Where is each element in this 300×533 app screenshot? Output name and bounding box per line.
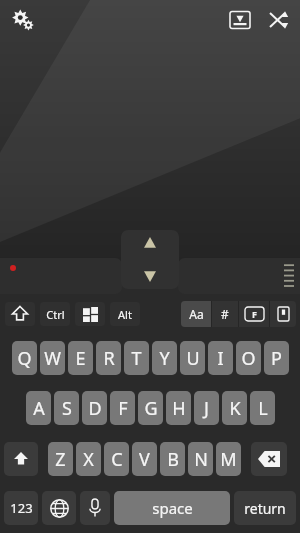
button[interactable]: Y — [152, 341, 177, 375]
staticText: F — [252, 308, 257, 320]
staticText: K — [229, 396, 241, 421]
staticText: F — [118, 396, 128, 421]
button[interactable]: 123 — [4, 491, 38, 525]
staticText: O — [241, 346, 256, 371]
button[interactable]: Backspace — [251, 442, 287, 476]
staticText: X — [83, 447, 94, 472]
button[interactable]: P — [264, 341, 289, 375]
button[interactable]: O — [236, 341, 261, 375]
staticText: N — [194, 447, 208, 472]
button[interactable]: E — [68, 341, 93, 375]
staticText: J — [204, 396, 209, 421]
button[interactable]: Shuffle — [262, 4, 294, 36]
button[interactable]: V — [132, 442, 157, 476]
button[interactable]: W — [40, 341, 65, 375]
staticText: G — [144, 396, 158, 421]
button[interactable] — [75, 302, 105, 326]
button[interactable]: G — [138, 391, 163, 425]
button[interactable]: Change language — [42, 491, 76, 525]
button[interactable]: Shift — [4, 442, 38, 476]
button[interactable]: Numpad — [270, 301, 296, 327]
button[interactable]: J — [194, 391, 219, 425]
button[interactable]: M — [216, 442, 241, 476]
button[interactable]: Q — [12, 341, 37, 375]
staticText: H — [172, 396, 186, 421]
staticText: C — [111, 447, 123, 472]
button[interactable]: Ctrl — [40, 302, 70, 326]
staticText: # — [221, 306, 229, 322]
staticText: 123 — [10, 499, 33, 517]
staticText: M — [220, 447, 237, 472]
staticText: B — [167, 447, 179, 472]
staticText: Alt — [118, 307, 132, 322]
button[interactable]: R — [96, 341, 121, 375]
staticText: D — [88, 396, 102, 421]
button[interactable]: S — [54, 391, 79, 425]
staticText: Z — [55, 447, 66, 472]
button[interactable]: H — [166, 391, 191, 425]
button[interactable]: D — [82, 391, 107, 425]
button[interactable]: L — [250, 391, 275, 425]
staticText: Ctrl — [46, 307, 65, 322]
staticText: W — [44, 346, 61, 371]
staticText: E — [75, 346, 86, 371]
button[interactable]: Keyboard — [224, 4, 256, 36]
button[interactable]: B — [160, 442, 185, 476]
staticText: S — [62, 396, 72, 421]
button[interactable]: N — [188, 442, 213, 476]
button[interactable]: F — [110, 391, 135, 425]
button[interactable]: U — [180, 341, 205, 375]
button[interactable]: Aa — [181, 301, 211, 327]
button[interactable]: return — [234, 491, 296, 525]
staticText: U — [186, 346, 200, 371]
button[interactable]: # — [212, 301, 238, 327]
staticText: P — [271, 346, 282, 371]
button[interactable]: T — [124, 341, 149, 375]
button[interactable]: K — [222, 391, 247, 425]
button[interactable]: I — [208, 341, 233, 375]
button[interactable]: Z — [48, 442, 73, 476]
button[interactable]: C — [104, 442, 129, 476]
button[interactable]: Voice input — [80, 491, 110, 525]
staticText: T — [131, 346, 142, 371]
staticText: space — [152, 498, 193, 518]
staticText: return — [244, 499, 286, 518]
button[interactable]: A — [26, 391, 51, 425]
button[interactable]: Settings — [6, 4, 40, 38]
button[interactable]: X — [76, 442, 101, 476]
staticText: I — [217, 346, 224, 371]
button[interactable]: Scroll — [121, 230, 179, 289]
button[interactable]: Right click — [178, 258, 300, 294]
staticText: Q — [17, 346, 32, 371]
button[interactable]: Left click — [0, 258, 122, 294]
button[interactable]: space — [114, 491, 230, 525]
button[interactable]: Alt — [110, 302, 140, 326]
staticText: L — [258, 396, 268, 421]
staticText: R — [103, 346, 115, 371]
button[interactable] — [5, 302, 35, 326]
staticText: A — [33, 396, 45, 421]
staticText: Aa — [189, 306, 204, 322]
staticText: V — [139, 447, 150, 472]
staticText: Y — [159, 346, 170, 371]
button[interactable]: Function keys — [239, 301, 269, 327]
